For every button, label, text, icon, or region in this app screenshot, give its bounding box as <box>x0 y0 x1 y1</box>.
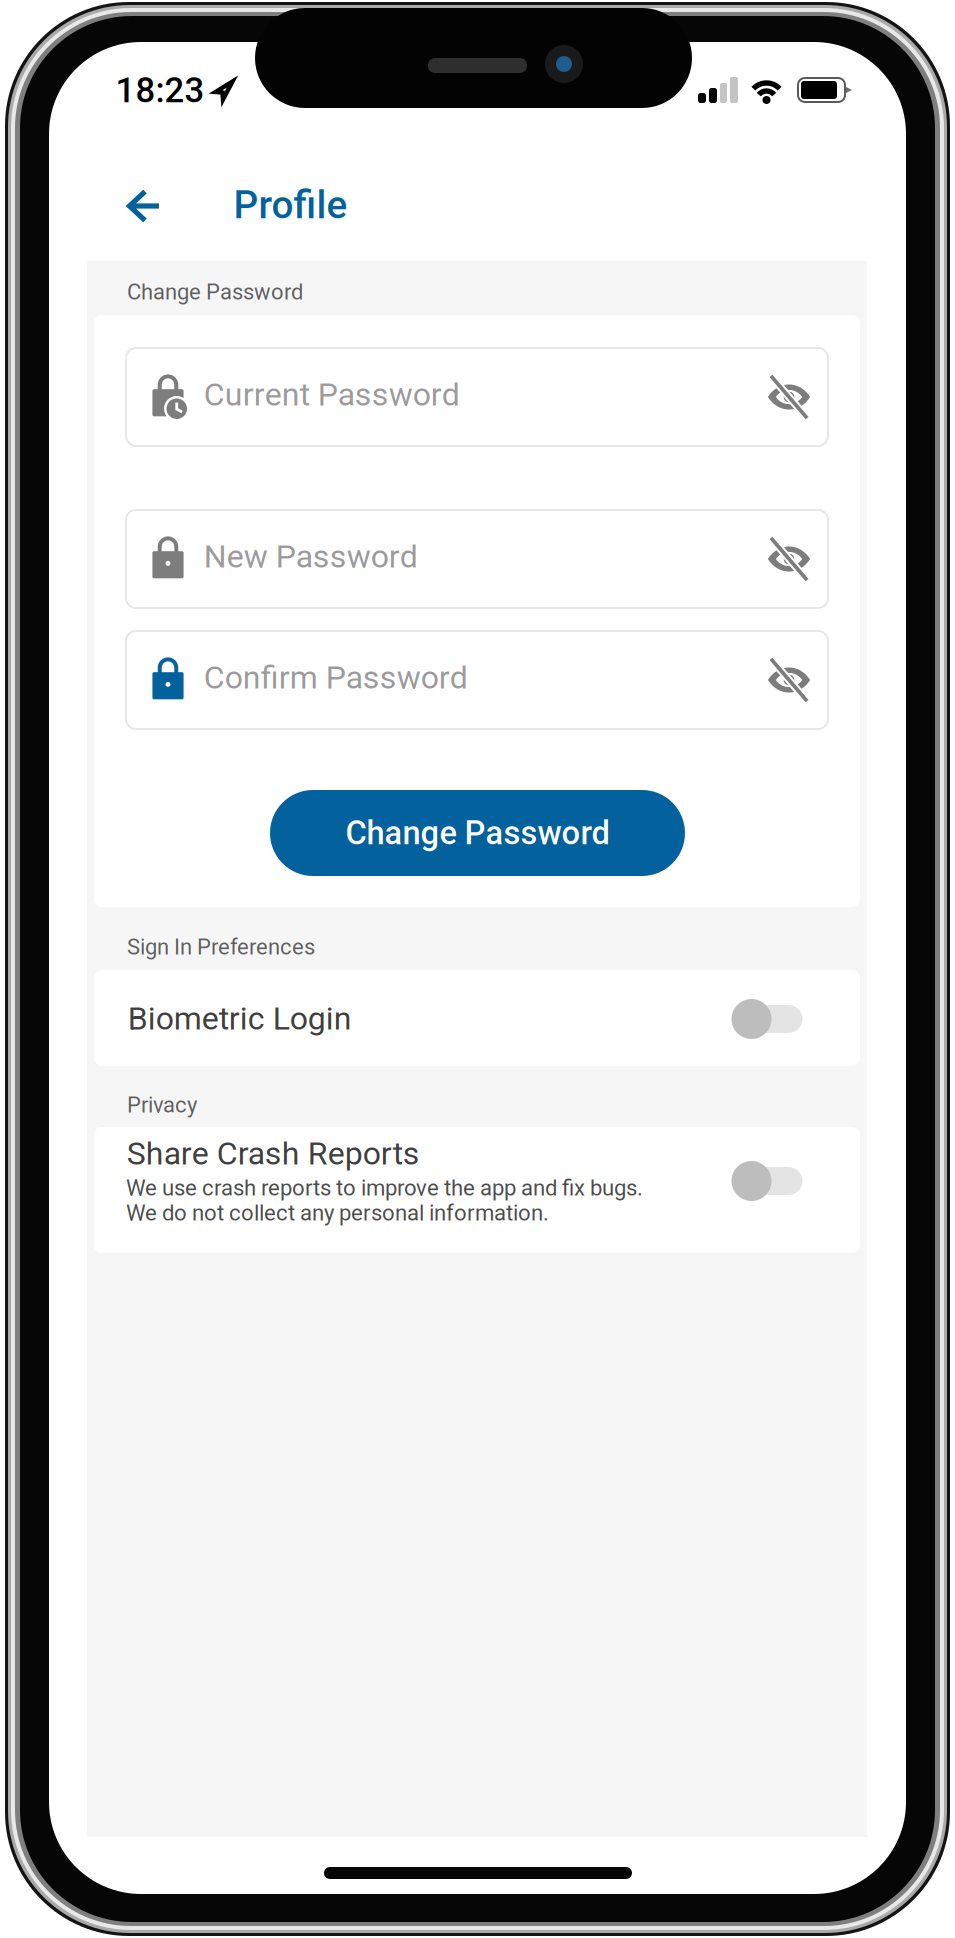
button[interactable]: Back <box>115 179 173 233</box>
staticText: We use crash reports to improve the app … <box>126 1175 643 1201</box>
button[interactable]: Show current password <box>767 375 811 419</box>
staticText: Share Crash Reports <box>127 1135 420 1172</box>
staticText: Biometric Login <box>128 1000 352 1037</box>
staticText: New Password <box>204 538 418 575</box>
staticText: Current Password <box>204 376 460 413</box>
staticText: Privacy <box>127 1092 197 1118</box>
staticText: Change Password <box>345 814 609 852</box>
staticText: We do not collect any personal informati… <box>126 1200 549 1226</box>
button[interactable]: Change Password <box>270 790 685 876</box>
staticText: 18:23 <box>116 70 205 111</box>
button[interactable]: Show confirm password <box>767 658 811 702</box>
staticText: Change Password <box>127 279 303 305</box>
staticText: Sign In Preferences <box>127 934 315 960</box>
button[interactable]: Show new password <box>767 537 811 581</box>
staticText: Profile <box>233 182 347 228</box>
staticText: Confirm Password <box>204 659 468 696</box>
